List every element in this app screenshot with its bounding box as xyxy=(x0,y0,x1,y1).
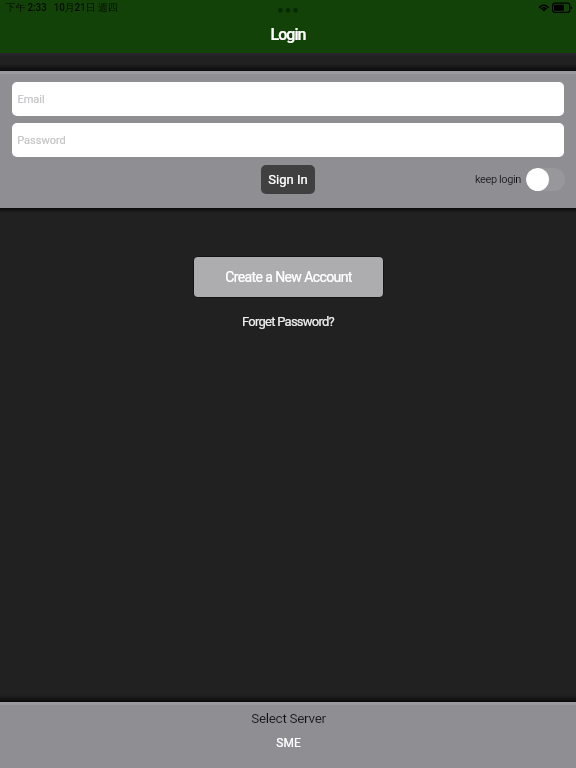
staticText: Select Server xyxy=(251,710,326,726)
staticText: keep login xyxy=(475,173,521,186)
staticText: Create a New Account xyxy=(225,269,352,285)
button[interactable]: Create a New Account xyxy=(194,257,383,297)
staticText: Password xyxy=(17,134,66,147)
button[interactable]: Email xyxy=(12,82,564,116)
staticText: Login xyxy=(0,25,576,44)
button[interactable]: SME xyxy=(276,736,301,750)
button[interactable]: Forget Password? xyxy=(242,314,334,329)
staticText: Email xyxy=(17,93,45,106)
staticText: 下午 2:33 10月21日 週四 xyxy=(5,1,118,14)
staticText: Sign In xyxy=(268,172,308,187)
button[interactable]: keep login toggle xyxy=(526,168,565,191)
button[interactable]: Password xyxy=(12,123,564,157)
button[interactable]: Sign In xyxy=(261,165,315,194)
